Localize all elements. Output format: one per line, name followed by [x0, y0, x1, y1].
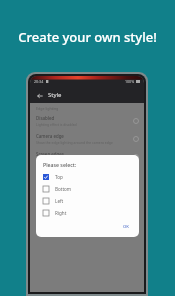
button[interactable]: Fingerprint sensor [30, 169, 144, 186]
staticText: Please select: [43, 161, 77, 168]
staticText: Lighting effect is disabled [36, 122, 77, 127]
staticText: Disabled [36, 115, 55, 121]
staticText: Bottom [55, 186, 72, 192]
staticText: 100% [125, 79, 135, 84]
button[interactable]: Screen edges [30, 151, 144, 163]
staticText: Show a lighting effect around the finger… [36, 176, 129, 186]
staticText: Top [55, 174, 63, 180]
staticText: Camera edge [36, 133, 64, 139]
staticText: Left [55, 198, 64, 204]
staticText: Style [48, 91, 62, 99]
staticText: OK [123, 224, 129, 230]
staticText: Fingerprint sensor [36, 169, 75, 175]
button[interactable]: OK [120, 223, 132, 231]
button[interactable]: Right [43, 210, 132, 216]
button[interactable]: Disabled [30, 115, 144, 127]
staticText: Right [55, 210, 67, 216]
staticText: Screen edges [36, 151, 64, 157]
button[interactable]: Top [43, 174, 132, 180]
staticText: Create your own style! [0, 28, 175, 46]
button[interactable]: Back [30, 87, 144, 103]
staticText: 20:34 [34, 79, 44, 84]
button[interactable]: Left [43, 198, 132, 204]
button[interactable]: Camera edge [30, 133, 144, 145]
button[interactable]: Back [35, 91, 44, 100]
staticText: Edge lighting [36, 106, 59, 111]
staticText: Show the edge lighting around the camera… [36, 140, 113, 145]
button[interactable]: Bottom [43, 186, 132, 192]
